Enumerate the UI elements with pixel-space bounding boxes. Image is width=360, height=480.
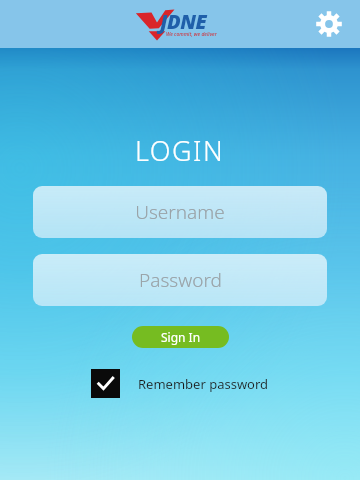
staticText: Remember password xyxy=(138,375,269,393)
button[interactable]: Remember password xyxy=(91,369,269,398)
button[interactable]: Username xyxy=(33,186,327,238)
staticText: LOGIN xyxy=(135,132,225,169)
staticText: Password xyxy=(139,267,222,293)
button[interactable]: Sign In xyxy=(132,326,229,348)
staticText: JDNE xyxy=(160,8,207,35)
button[interactable]: Settings xyxy=(312,7,346,41)
staticText: We commit, we deliver xyxy=(166,31,217,38)
staticText: Username xyxy=(135,199,225,225)
staticText: Sign In xyxy=(161,329,201,345)
button[interactable]: Password xyxy=(33,254,327,306)
